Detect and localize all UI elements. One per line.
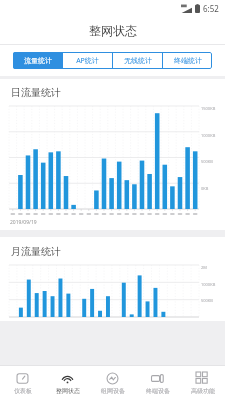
staticText: 日流量统计 — [11, 86, 61, 99]
staticText: 2019/09/19 — [10, 219, 37, 226]
staticText: 无线统计 — [124, 56, 152, 65]
staticText: 整网状态 — [89, 23, 137, 38]
button[interactable]: 无线统计 — [113, 52, 162, 69]
staticText: 1000KB — [201, 282, 216, 287]
staticText: 0KB — [201, 186, 209, 191]
staticText: 1500KB — [201, 106, 216, 111]
button[interactable]: 仪表板 — [0, 366, 45, 400]
staticText: 流量统计 — [24, 56, 52, 65]
staticText: 1000KB — [201, 133, 216, 138]
staticText: 组网设备 — [101, 387, 125, 395]
button[interactable]: 流量统计 — [13, 52, 62, 69]
staticText: 6:52 — [203, 3, 219, 14]
staticText: 整网状态 — [56, 387, 80, 395]
staticText: 500KB — [201, 159, 213, 164]
button[interactable]: 高级功能 — [180, 366, 225, 400]
staticText: 终端设备 — [146, 387, 170, 395]
staticText: 仪表板 — [14, 387, 32, 395]
staticText: AP统计 — [76, 56, 99, 66]
button[interactable]: 终端统计 — [163, 52, 212, 69]
staticText: 终端统计 — [174, 56, 202, 65]
staticText: 高级功能 — [191, 387, 215, 395]
button[interactable]: 整网状态 — [45, 366, 90, 400]
button[interactable]: 组网设备 — [90, 366, 135, 400]
button[interactable]: AP统计 — [63, 52, 112, 69]
staticText: 2M — [201, 265, 207, 270]
staticText: 月流量统计 — [11, 245, 61, 258]
staticText: 500KB — [201, 298, 213, 303]
button[interactable]: 终端设备 — [135, 366, 180, 400]
